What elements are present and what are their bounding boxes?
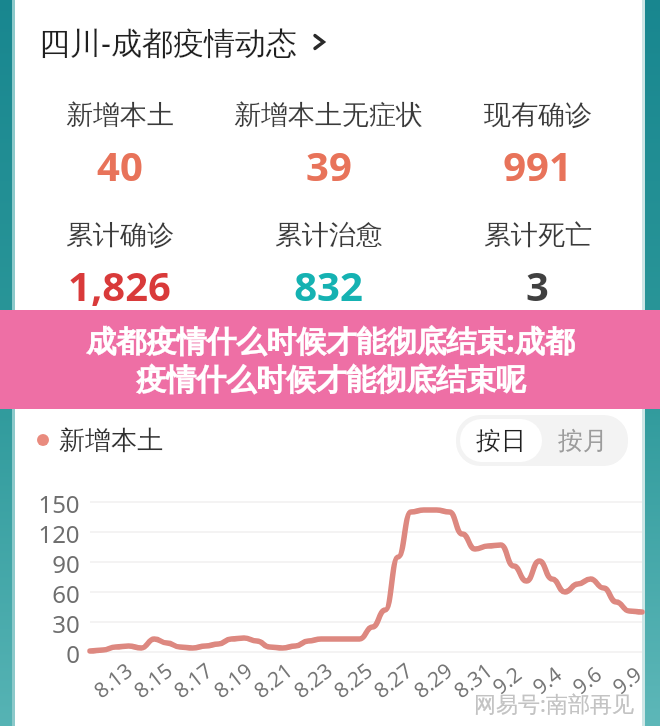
staticText: 9.2 [486, 660, 528, 701]
staticText: 60 [52, 577, 80, 607]
staticText: 30 [52, 607, 80, 637]
staticText: 90 [52, 547, 80, 577]
staticText: 9.9 [606, 660, 648, 701]
staticText: 8.27 [367, 656, 418, 705]
staticText: 新增本土无症状 [234, 98, 423, 132]
staticText: 成都疫情什么时候才能彻底结束:成都 [86, 320, 575, 361]
staticText: 0 [66, 637, 80, 667]
staticText: 8.23 [287, 656, 338, 705]
button[interactable]: 按月 [542, 419, 624, 462]
staticText: 累计治愈 [275, 218, 383, 252]
staticText: 39 [306, 138, 352, 192]
staticText: 四川-成都疫情动态 [39, 21, 297, 63]
staticText: 疫情什么时候才能彻底结束呢 [136, 361, 526, 399]
staticText: 9.6 [566, 660, 608, 701]
button[interactable]: 按日 [460, 419, 542, 462]
staticText: 新增本土 [59, 424, 163, 457]
staticText: 新增本土 [66, 98, 174, 132]
staticText: 991 [503, 138, 572, 192]
staticText: 网易号:南部再见 [474, 688, 634, 718]
staticText: 8.17 [167, 656, 218, 705]
staticText: 按日 [476, 425, 526, 456]
staticText: 8.25 [327, 656, 378, 705]
staticText: 150 [38, 487, 80, 517]
button[interactable]: 四川-成都疫情动态 [15, 0, 642, 84]
staticText: 40 [97, 138, 143, 192]
staticText: 8.31 [447, 656, 498, 705]
staticText: 累计确诊 [66, 218, 174, 252]
staticText: 8.21 [247, 656, 298, 705]
staticText: 8.13 [87, 656, 138, 705]
staticText: 120 [38, 517, 80, 547]
staticText: 8.29 [407, 656, 458, 705]
staticText: 8.15 [127, 656, 178, 705]
staticText: 累计死亡 [484, 218, 592, 252]
staticText: 按月 [558, 425, 608, 456]
staticText: 1,826 [68, 258, 171, 312]
staticText: 现有确诊 [484, 98, 592, 132]
staticText: 9.4 [526, 660, 568, 701]
staticText: 3 [526, 258, 549, 312]
staticText: 832 [294, 258, 363, 312]
staticText: 8.19 [207, 656, 258, 705]
